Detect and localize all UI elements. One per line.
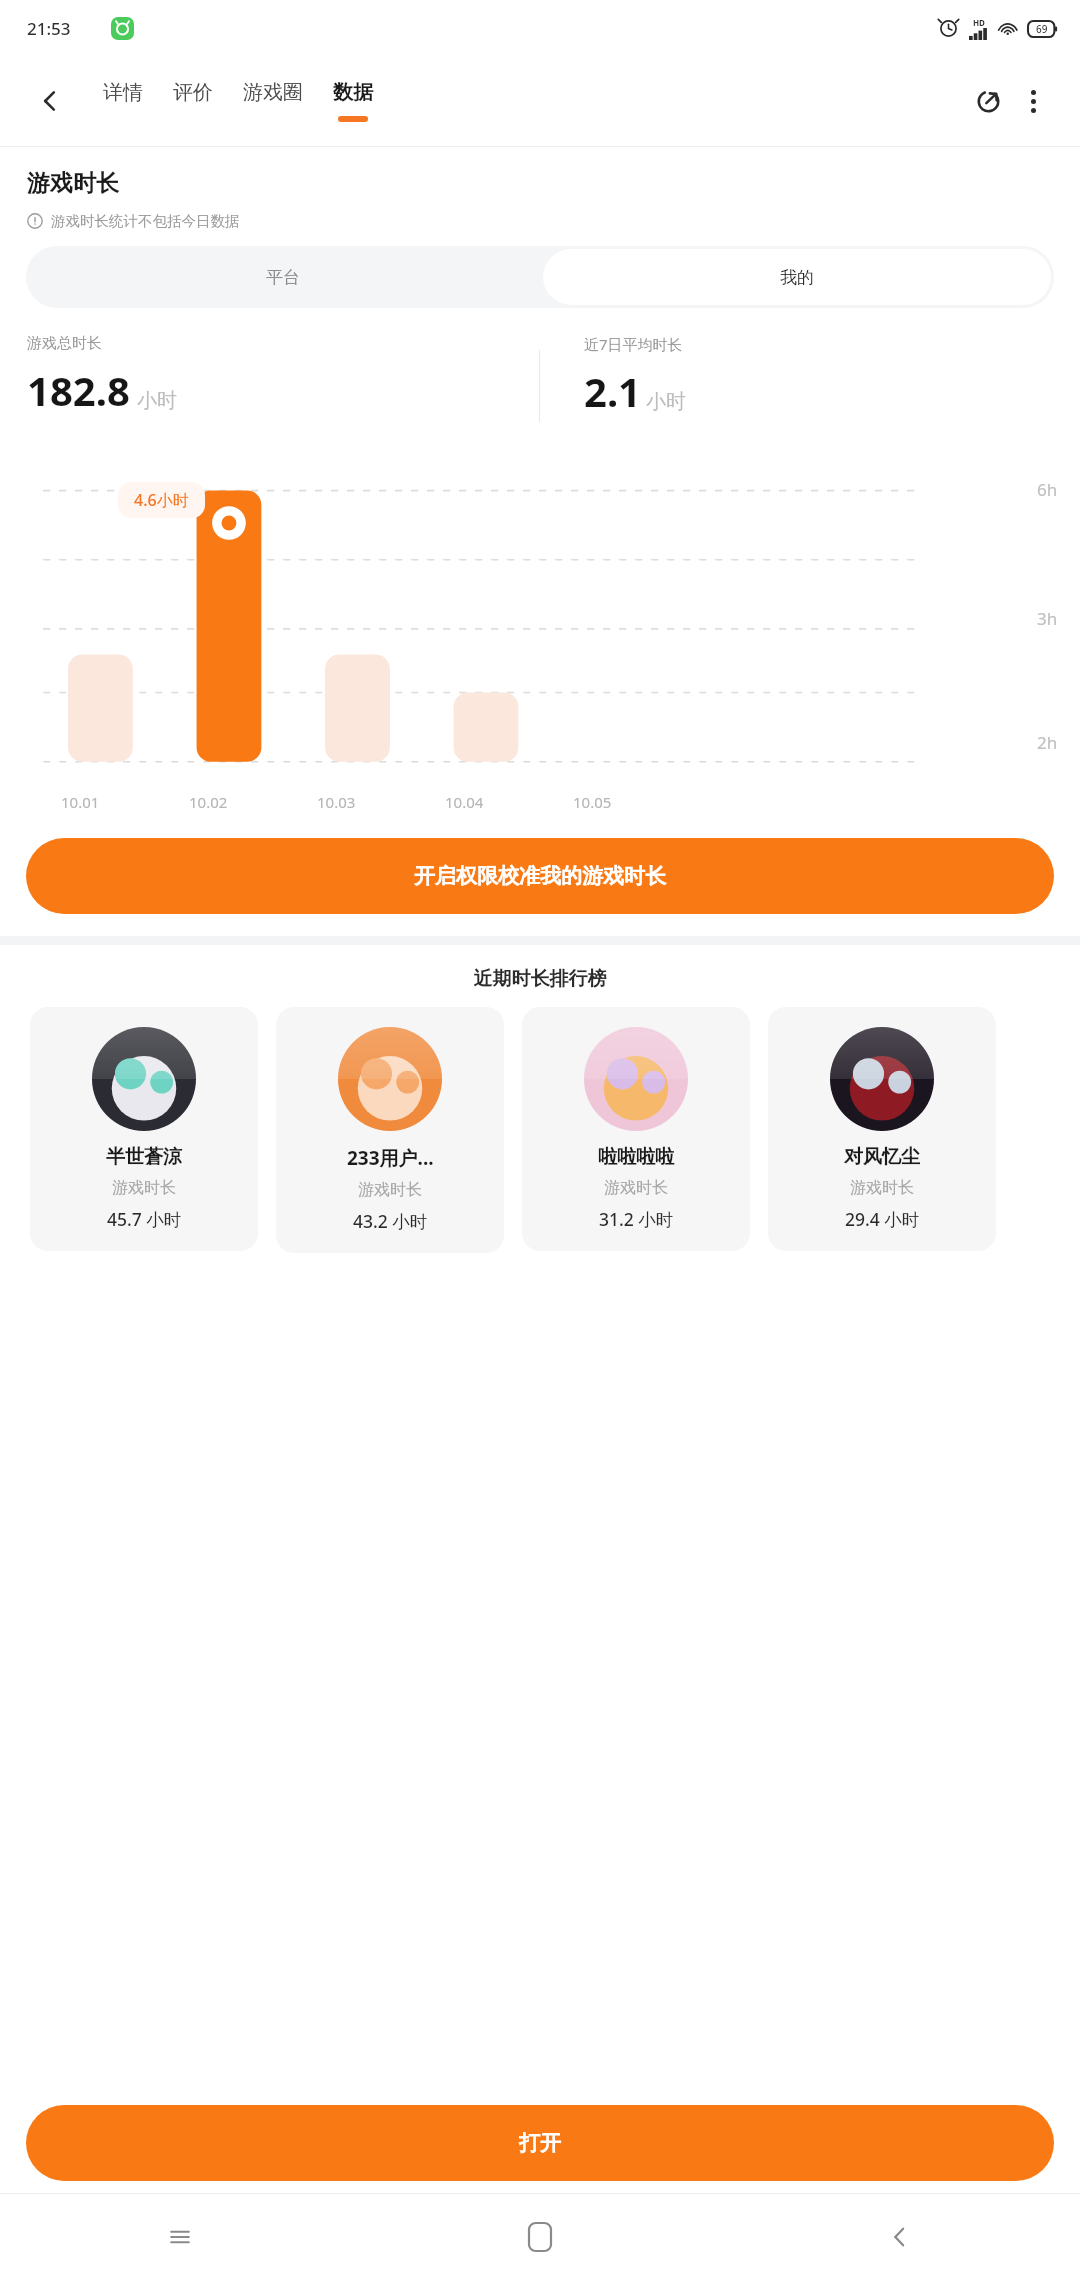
button[interactable]: 我的: [543, 249, 1051, 305]
staticText: 29.4 小时: [845, 1207, 920, 1231]
staticText: 游戏时长: [850, 1178, 914, 1198]
button[interactable]: 233用户...: [276, 1007, 504, 1253]
staticText: 开启权限校准我的游戏时长: [414, 863, 666, 889]
staticText: 小时: [137, 388, 177, 413]
button[interactable]: More options: [1012, 80, 1054, 122]
staticText: 平台: [266, 267, 300, 288]
button[interactable]: 对风忆尘: [768, 1007, 996, 1251]
staticText: 对风忆尘: [844, 1145, 920, 1169]
staticText: 69: [1036, 22, 1048, 36]
button[interactable]: 打开: [26, 2105, 1054, 2181]
staticText: 近期时长排行榜: [0, 967, 1080, 991]
staticText: 小时: [646, 389, 686, 414]
staticText: 4.6小时: [134, 489, 189, 511]
staticText: 10.02: [189, 792, 228, 812]
staticText: 10.05: [573, 792, 612, 812]
staticText: 2.1: [584, 364, 641, 418]
staticText: 3h: [1037, 607, 1058, 630]
staticText: 近7日平均时长: [584, 334, 683, 354]
button[interactable]: 评价: [173, 80, 213, 122]
staticText: HD: [973, 17, 985, 28]
staticText: 打开: [519, 2130, 561, 2156]
staticText: 游戏时长: [112, 1178, 176, 1198]
staticText: 2h: [1037, 731, 1058, 754]
staticText: 游戏圈: [243, 80, 303, 105]
staticText: 10.01: [61, 792, 100, 812]
staticText: 10.04: [445, 792, 484, 812]
button[interactable]: 平台: [26, 246, 540, 308]
button[interactable]: 啦啦啦啦: [522, 1007, 750, 1251]
staticText: 182.8: [27, 363, 130, 417]
staticText: 我的: [780, 267, 814, 288]
staticText: 21:53: [27, 17, 71, 40]
button[interactable]: 开启权限校准我的游戏时长: [26, 838, 1054, 914]
staticText: 游戏时长: [27, 169, 119, 198]
staticText: 游戏总时长: [27, 334, 102, 353]
button[interactable]: Share: [964, 77, 1012, 125]
staticText: 43.2 小时: [353, 1209, 428, 1233]
button[interactable]: 游戏圈: [243, 80, 303, 122]
button[interactable]: Back: [26, 77, 74, 125]
staticText: 游戏时长: [358, 1180, 422, 1200]
button[interactable]: 详情: [103, 80, 143, 122]
button[interactable]: Back: [720, 2194, 1080, 2280]
staticText: 游戏时长统计不包括今日数据: [51, 212, 240, 230]
staticText: 45.7 小时: [107, 1207, 182, 1231]
staticText: 半世蒼涼: [106, 1145, 182, 1169]
staticText: 啦啦啦啦: [598, 1145, 674, 1169]
staticText: 31.2 小时: [599, 1207, 674, 1231]
staticText: 评价: [173, 80, 213, 105]
button[interactable]: Recent apps: [0, 2194, 360, 2280]
staticText: 游戏时长: [604, 1178, 668, 1198]
button[interactable]: 数据: [333, 80, 373, 122]
staticText: 10.03: [317, 792, 356, 812]
staticText: 233用户...: [347, 1145, 434, 1171]
button[interactable]: 半世蒼涼: [30, 1007, 258, 1251]
button[interactable]: Home: [360, 2194, 720, 2280]
staticText: 6h: [1037, 478, 1058, 501]
staticText: 数据: [333, 80, 373, 105]
staticText: 详情: [103, 80, 143, 105]
